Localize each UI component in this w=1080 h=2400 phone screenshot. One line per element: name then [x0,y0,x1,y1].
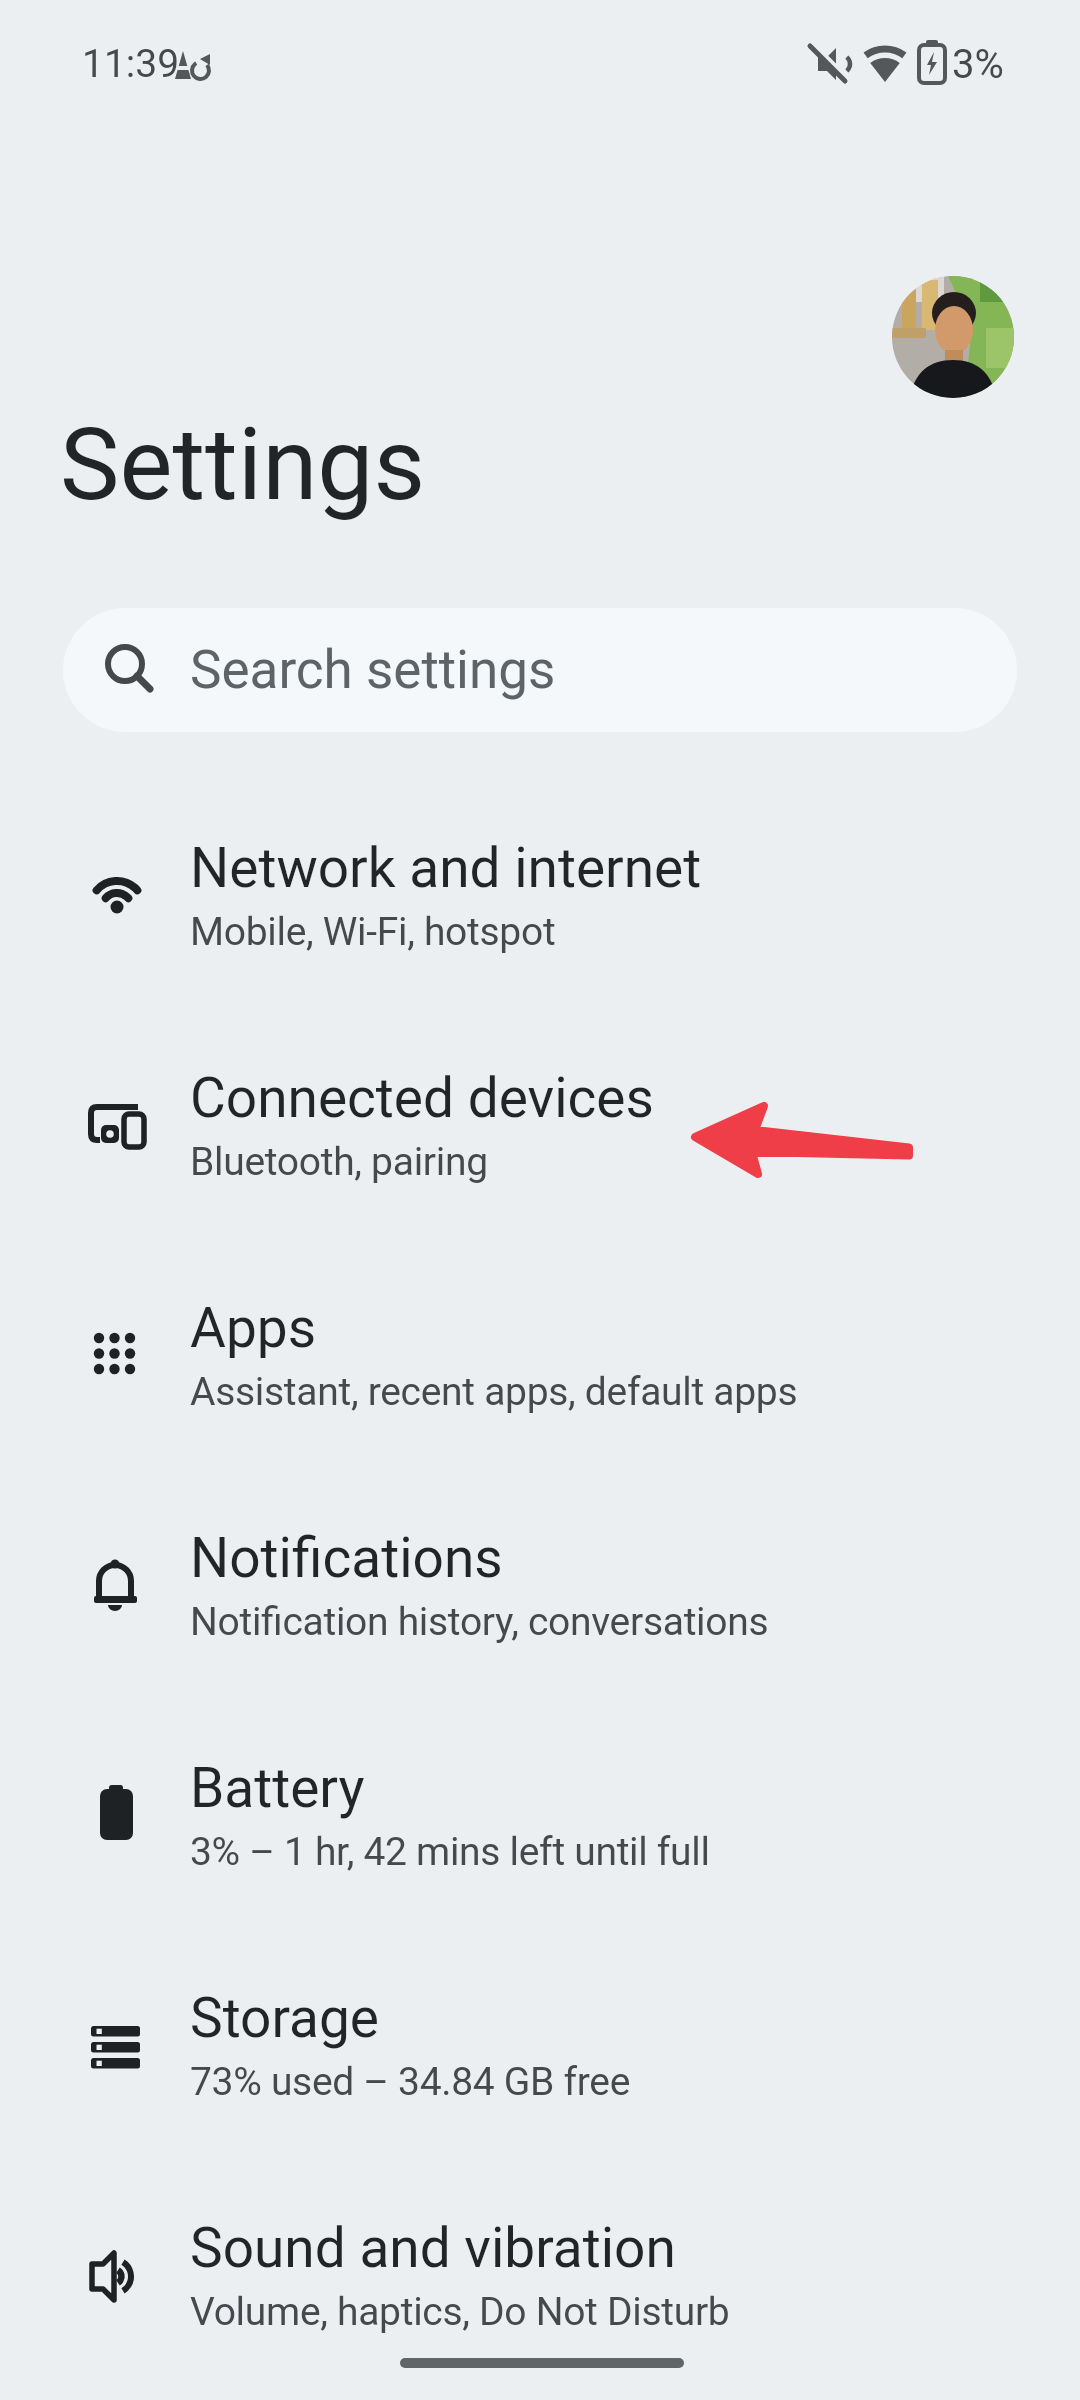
staticText: Notifications [190,1526,503,1590]
staticText: Storage [190,1986,380,2050]
button[interactable]: Network and internet [0,783,1080,1007]
button[interactable]: Battery [0,1703,1080,1927]
button[interactable]: Apps [0,1243,1080,1467]
staticText: 11:39 [82,41,180,87]
button[interactable]: Search settings [63,608,1017,732]
staticText: Settings [60,406,426,523]
button[interactable]: Connected devices [0,1013,1080,1237]
staticText: Volume, haptics, Do Not Disturb [190,2289,730,2335]
staticText: Search settings [190,639,556,701]
button[interactable]: Storage [0,1933,1080,2157]
staticText: Connected devices [190,1066,654,1130]
staticText: 73% used – 34.84 GB free [190,2059,631,2105]
button[interactable] [892,276,1014,398]
staticText: Assistant, recent apps, default apps [190,1369,798,1415]
staticText: Battery [190,1756,365,1820]
button[interactable]: Notifications [0,1473,1080,1697]
staticText: Mobile, Wi-Fi, hotspot [190,909,556,955]
staticText: 3% – 1 hr, 42 mins left until full [190,1829,710,1875]
staticText: Bluetooth, pairing [190,1139,488,1185]
staticText: Network and internet [190,836,702,900]
staticText: Notification history, conversations [190,1599,769,1645]
button[interactable]: Sound and vibration [0,2163,1080,2387]
staticText: Sound and vibration [190,2216,676,2280]
staticText: 3% [952,41,1004,88]
staticText: Apps [190,1296,317,1360]
